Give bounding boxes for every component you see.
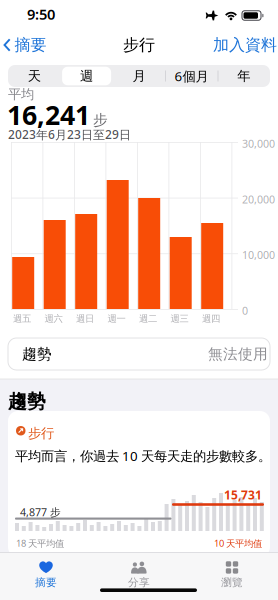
- staticText: 4,877 步: [20, 505, 61, 519]
- staticText: 無法使用: [208, 345, 268, 363]
- staticText: 步行: [123, 35, 155, 55]
- button[interactable]: 年: [218, 65, 270, 87]
- staticText: 30,000: [242, 136, 275, 151]
- staticText: 天: [28, 68, 41, 84]
- staticText: 摘要: [14, 35, 46, 55]
- button[interactable]: 6個月: [165, 65, 218, 87]
- staticText: 10 天平均值: [214, 537, 262, 549]
- staticText: 平均: [8, 86, 34, 102]
- staticText: 週日: [76, 313, 94, 324]
- button[interactable]: 天: [8, 65, 60, 87]
- staticText: 平均而言，你過去 10 天每天走的步數較多。: [15, 447, 271, 465]
- staticText: 分享: [128, 576, 150, 589]
- staticText: 0: [242, 303, 248, 318]
- staticText: 摘要: [35, 576, 57, 589]
- button[interactable]: 週: [60, 65, 113, 87]
- staticText: 9:50: [27, 4, 55, 24]
- staticText: 步行: [28, 425, 54, 441]
- staticText: 週: [80, 68, 93, 84]
- staticText: 2023年6月23日至29日: [8, 126, 131, 142]
- staticText: 週四: [202, 313, 220, 324]
- staticText: 週三: [170, 313, 188, 324]
- staticText: 週二: [139, 313, 157, 324]
- staticText: 趨勢: [8, 390, 46, 413]
- staticText: 週六: [44, 313, 62, 324]
- staticText: 週一: [107, 313, 125, 324]
- staticText: 16,241: [7, 97, 90, 132]
- button[interactable]: 月: [113, 65, 165, 87]
- staticText: 趨勢: [22, 345, 52, 363]
- staticText: 6個月: [174, 67, 208, 85]
- staticText: 步: [93, 111, 108, 129]
- button[interactable]: 返回摘要: [3, 35, 46, 55]
- staticText: 20,000: [242, 192, 275, 206]
- staticText: 瀏覽: [221, 576, 243, 589]
- staticText: 週五: [13, 313, 31, 324]
- staticText: 年: [237, 68, 250, 84]
- staticText: 18 天平均值: [16, 537, 64, 549]
- staticText: 10,000: [242, 248, 275, 262]
- staticText: 月: [132, 68, 145, 84]
- staticText: 15,731: [224, 487, 262, 503]
- button[interactable]: 趨勢: [8, 338, 270, 370]
- staticText: 加入資料: [213, 35, 277, 55]
- button[interactable]: 瀏覽: [192, 553, 272, 597]
- button[interactable]: 加入資料: [213, 35, 277, 55]
- button[interactable]: 分享: [99, 553, 179, 597]
- button[interactable]: 摘要: [6, 553, 86, 597]
